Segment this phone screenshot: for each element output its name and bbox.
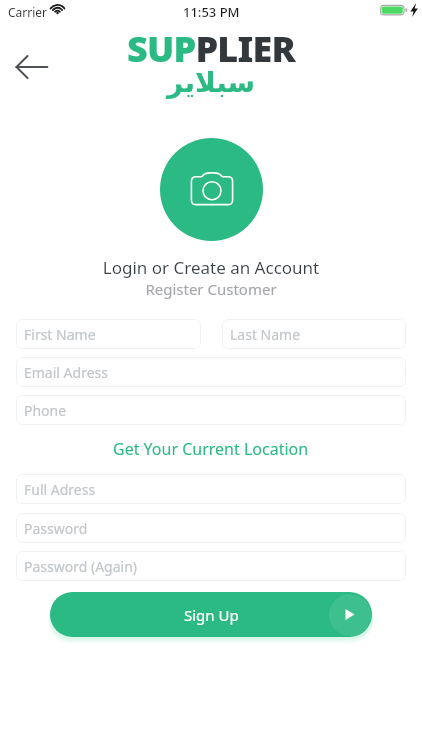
staticText: Password (Again)	[24, 557, 138, 576]
staticText: سبلاير	[167, 66, 256, 99]
button[interactable]: Password	[16, 513, 406, 543]
staticText: Last Name	[230, 325, 301, 344]
staticText: Phone	[24, 401, 67, 420]
staticText: Sign Up	[184, 605, 239, 625]
staticText: First Name	[24, 325, 96, 344]
staticText: Password	[24, 519, 88, 538]
button[interactable]: Continue	[329, 594, 371, 636]
button[interactable]: Last Name	[222, 319, 406, 349]
button[interactable]: Email Adress	[16, 357, 406, 387]
staticText: Login or Create an Account	[0, 256, 422, 279]
staticText: Email Adress	[24, 363, 108, 382]
button[interactable]: Back	[10, 47, 54, 87]
staticText: SUPPLIER	[127, 24, 296, 73]
button[interactable]: Full Adress	[16, 474, 406, 504]
button[interactable]: Phone	[16, 395, 406, 425]
button[interactable]: First Name	[16, 319, 201, 349]
button[interactable]: Add photo	[160, 138, 263, 241]
button[interactable]: Get Your Current Location	[16, 438, 406, 460]
staticText: Get Your Current Location	[113, 438, 309, 460]
button[interactable]: Sign Up	[50, 592, 372, 637]
staticText: Full Adress	[24, 480, 96, 499]
staticText: Register Customer	[0, 279, 422, 299]
staticText: 11:53 PM	[183, 3, 240, 21]
staticText: Carrier	[8, 4, 48, 20]
button[interactable]: Password (Again)	[16, 551, 406, 581]
